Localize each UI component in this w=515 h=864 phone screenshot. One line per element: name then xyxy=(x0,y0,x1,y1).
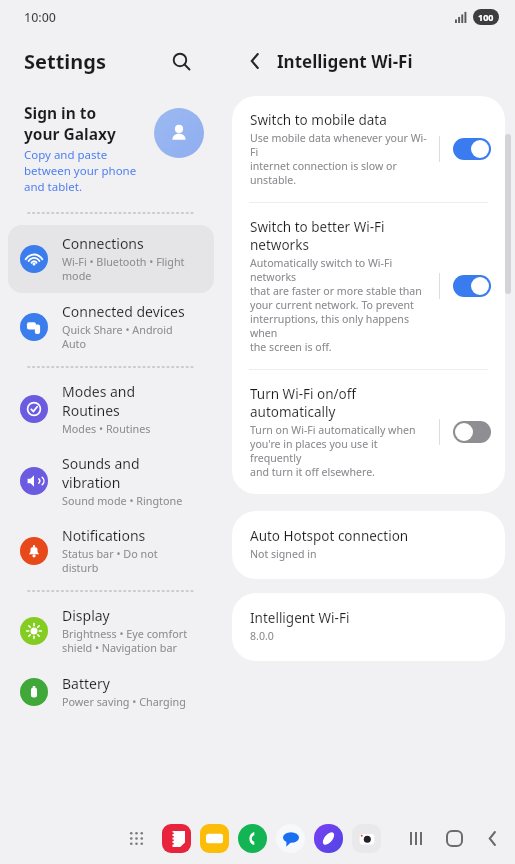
button[interactable]: Switch to better Wi-Fi networks xyxy=(232,203,505,369)
staticText: Automatically switch to Wi-Fi networks t… xyxy=(250,256,429,354)
staticText: Use mobile data whenever your Wi-Fi inte… xyxy=(250,131,429,187)
staticText: Sign in to xyxy=(24,102,97,123)
button[interactable]: Messages xyxy=(271,819,309,857)
button[interactable]: Display xyxy=(8,597,214,665)
button[interactable]: Sign in to xyxy=(0,102,222,195)
button[interactable]: Notifications xyxy=(8,517,214,585)
staticText: 10:00 xyxy=(24,9,57,26)
button[interactable]: Camera xyxy=(347,819,385,857)
button[interactable]: Internet xyxy=(309,819,347,857)
button[interactable]: Auto Hotspot connection xyxy=(232,511,505,579)
staticText: Auto Hotspot connection xyxy=(250,527,409,545)
button[interactable]: Recents xyxy=(397,819,435,857)
staticText: Notifications xyxy=(62,526,146,545)
staticText: Settings xyxy=(24,48,106,75)
staticText: Modes • Routines xyxy=(62,421,151,436)
staticText: Brightness • Eye comfort shield • Naviga… xyxy=(62,626,188,656)
staticText: Quick Share • Android Auto xyxy=(62,322,173,352)
button[interactable]: Home xyxy=(435,819,473,857)
staticText: Turn Wi-Fi on/off automatically xyxy=(250,385,356,421)
staticText: Wi-Fi • Bluetooth • Flight mode xyxy=(62,254,185,284)
button[interactable]: Connected devices xyxy=(8,293,214,361)
button[interactable]: Battery xyxy=(8,665,214,718)
button[interactable]: Switch to mobile data xyxy=(232,96,505,202)
staticText: 100 xyxy=(478,11,494,23)
staticText: Modes and Routines xyxy=(62,382,136,420)
staticText: 8.0.0 xyxy=(250,629,274,643)
staticText: Not signed in xyxy=(250,547,317,561)
button[interactable]: Notes xyxy=(157,819,195,857)
button[interactable]: Phone xyxy=(233,819,271,857)
staticText: Power saving • Charging xyxy=(62,694,186,709)
button[interactable]: Back xyxy=(473,819,511,857)
staticText: Copy and paste between your phone and ta… xyxy=(24,147,137,195)
staticText: Display xyxy=(62,606,110,625)
button[interactable]: Intelligent Wi-Fi xyxy=(232,593,505,661)
button[interactable]: On xyxy=(453,138,491,160)
staticText: Turn on Wi-Fi automatically when you're … xyxy=(250,423,429,479)
staticText: Connected devices xyxy=(62,302,185,321)
staticText: Sound mode • Ringtone xyxy=(62,493,183,508)
staticText: Sounds and vibration xyxy=(62,454,140,492)
button[interactable]: On xyxy=(453,275,491,297)
staticText: Status bar • Do not disturb xyxy=(62,546,158,576)
button[interactable]: Search xyxy=(164,44,198,78)
button[interactable]: Apps xyxy=(121,823,151,853)
button[interactable]: Files xyxy=(195,819,233,857)
staticText: Connections xyxy=(62,234,144,253)
staticText: Switch to mobile data xyxy=(250,111,387,129)
button[interactable]: Off xyxy=(453,421,491,443)
button[interactable]: Connections xyxy=(8,225,214,293)
staticText: Intelligent Wi-Fi xyxy=(277,50,413,73)
button[interactable]: Sounds and vibration xyxy=(8,445,214,517)
staticText: Switch to better Wi-Fi networks xyxy=(250,218,385,254)
button[interactable]: Back xyxy=(240,46,270,76)
staticText: Battery xyxy=(62,674,110,693)
staticText: your Galaxy xyxy=(24,123,116,144)
button[interactable]: Turn Wi-Fi on/off automatically xyxy=(232,370,505,494)
staticText: Intelligent Wi-Fi xyxy=(250,609,350,627)
button[interactable]: Modes and Routines xyxy=(8,373,214,445)
